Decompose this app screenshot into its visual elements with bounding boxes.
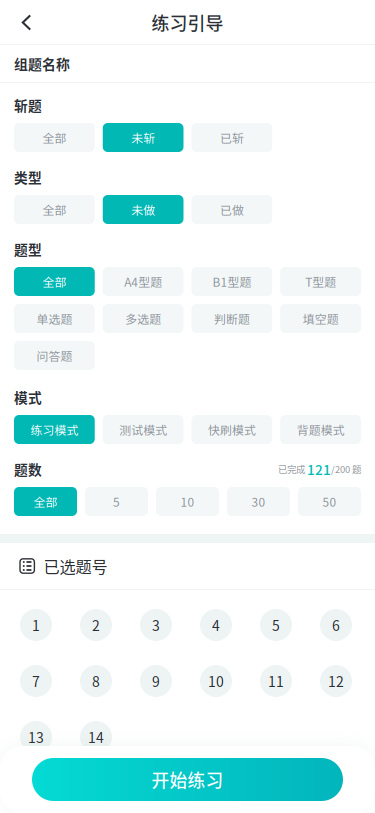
staticText: 5	[272, 615, 280, 635]
staticText: 2	[92, 615, 100, 635]
staticText: 未斩	[131, 129, 155, 146]
staticText: A4型题	[124, 273, 162, 290]
staticText: 30	[251, 493, 265, 510]
staticText: 已做	[220, 201, 244, 218]
button[interactable]: T型题	[280, 267, 361, 296]
button[interactable]: 未做	[103, 195, 184, 224]
staticText: 6	[332, 615, 340, 635]
button[interactable]: 10	[200, 665, 232, 697]
staticText: 已斩	[220, 129, 244, 146]
staticText: 7	[32, 671, 40, 691]
button[interactable]: 问答题	[14, 341, 95, 370]
staticText: 全部	[42, 201, 66, 218]
staticText: 练习引导	[151, 9, 223, 35]
staticText: 9	[152, 671, 160, 691]
staticText: 题型	[14, 239, 42, 259]
button[interactable]: 开始练习	[32, 758, 343, 801]
button[interactable]: 12	[320, 665, 352, 697]
staticText: 已完成	[278, 462, 307, 476]
button[interactable]: 4	[200, 609, 232, 641]
button[interactable]: 5	[260, 609, 292, 641]
staticText: 14	[88, 727, 104, 747]
button[interactable]: 单选题	[14, 304, 95, 333]
button[interactable]: 50	[298, 487, 361, 516]
staticText: 类型	[14, 167, 42, 187]
staticText: 121	[307, 459, 331, 479]
button[interactable]: 1	[20, 609, 52, 641]
button[interactable]: 练习模式	[14, 415, 95, 444]
staticText: /200 题	[331, 462, 361, 476]
button[interactable]: 8	[80, 665, 112, 697]
staticText: 单选题	[36, 310, 72, 327]
staticText: 5	[113, 493, 120, 510]
button[interactable]: 7	[20, 665, 52, 697]
staticText: 快刷模式	[208, 421, 256, 438]
button[interactable]: 快刷模式	[191, 415, 272, 444]
staticText: 组题名称	[14, 53, 70, 73]
button[interactable]: 未斩	[103, 123, 184, 152]
staticText: T型题	[305, 273, 336, 290]
button[interactable]: 3	[140, 609, 172, 641]
button[interactable]: 背题模式	[280, 415, 361, 444]
button[interactable]: 11	[260, 665, 292, 697]
staticText: 4	[212, 615, 220, 635]
button[interactable]: 已斩	[191, 123, 272, 152]
staticText: B1型题	[212, 273, 251, 290]
button[interactable]: 已做	[191, 195, 272, 224]
staticText: 3	[152, 615, 160, 635]
staticText: 12	[328, 671, 344, 691]
staticText: 练习模式	[30, 421, 78, 438]
button[interactable]: B1型题	[191, 267, 272, 296]
staticText: 斩题	[14, 95, 42, 115]
staticText: 全部	[42, 273, 66, 290]
staticText: 测试模式	[119, 421, 167, 438]
staticText: 未做	[131, 201, 155, 218]
button[interactable]: 14	[80, 721, 112, 753]
staticText: 背题模式	[297, 421, 345, 438]
staticText: 10	[180, 493, 194, 510]
staticText: 全部	[33, 493, 57, 510]
button[interactable]: 30	[227, 487, 290, 516]
staticText: 问答题	[36, 347, 72, 364]
staticText: 10	[208, 671, 224, 691]
staticText: 全部	[42, 129, 66, 146]
button[interactable]: 填空题	[280, 304, 361, 333]
button[interactable]: 判断题	[191, 304, 272, 333]
staticText: 题数	[14, 459, 42, 479]
staticText: 13	[28, 727, 44, 747]
button[interactable]: 2	[80, 609, 112, 641]
staticText: 已选题号	[43, 554, 107, 578]
button[interactable]: 13	[20, 721, 52, 753]
button[interactable]: 全部	[14, 267, 95, 296]
button[interactable]: A4型题	[103, 267, 184, 296]
button[interactable]: 5	[85, 487, 148, 516]
staticText: 8	[92, 671, 100, 691]
button[interactable]: 6	[320, 609, 352, 641]
staticText: 多选题	[125, 310, 161, 327]
staticText: 开始练习	[151, 767, 223, 792]
button[interactable]: 10	[156, 487, 219, 516]
staticText: 1	[32, 615, 40, 635]
button[interactable]: 多选题	[103, 304, 184, 333]
button[interactable]: 全部	[14, 195, 95, 224]
staticText: 填空题	[303, 310, 339, 327]
button[interactable]: 9	[140, 665, 172, 697]
staticText: 判断题	[214, 310, 250, 327]
staticText: 模式	[14, 387, 42, 407]
staticText: 11	[268, 671, 284, 691]
button[interactable]: Back	[0, 0, 49, 45]
button[interactable]: 全部	[14, 123, 95, 152]
staticText: 50	[322, 493, 336, 510]
button[interactable]: 全部	[14, 487, 77, 516]
button[interactable]: 测试模式	[103, 415, 184, 444]
